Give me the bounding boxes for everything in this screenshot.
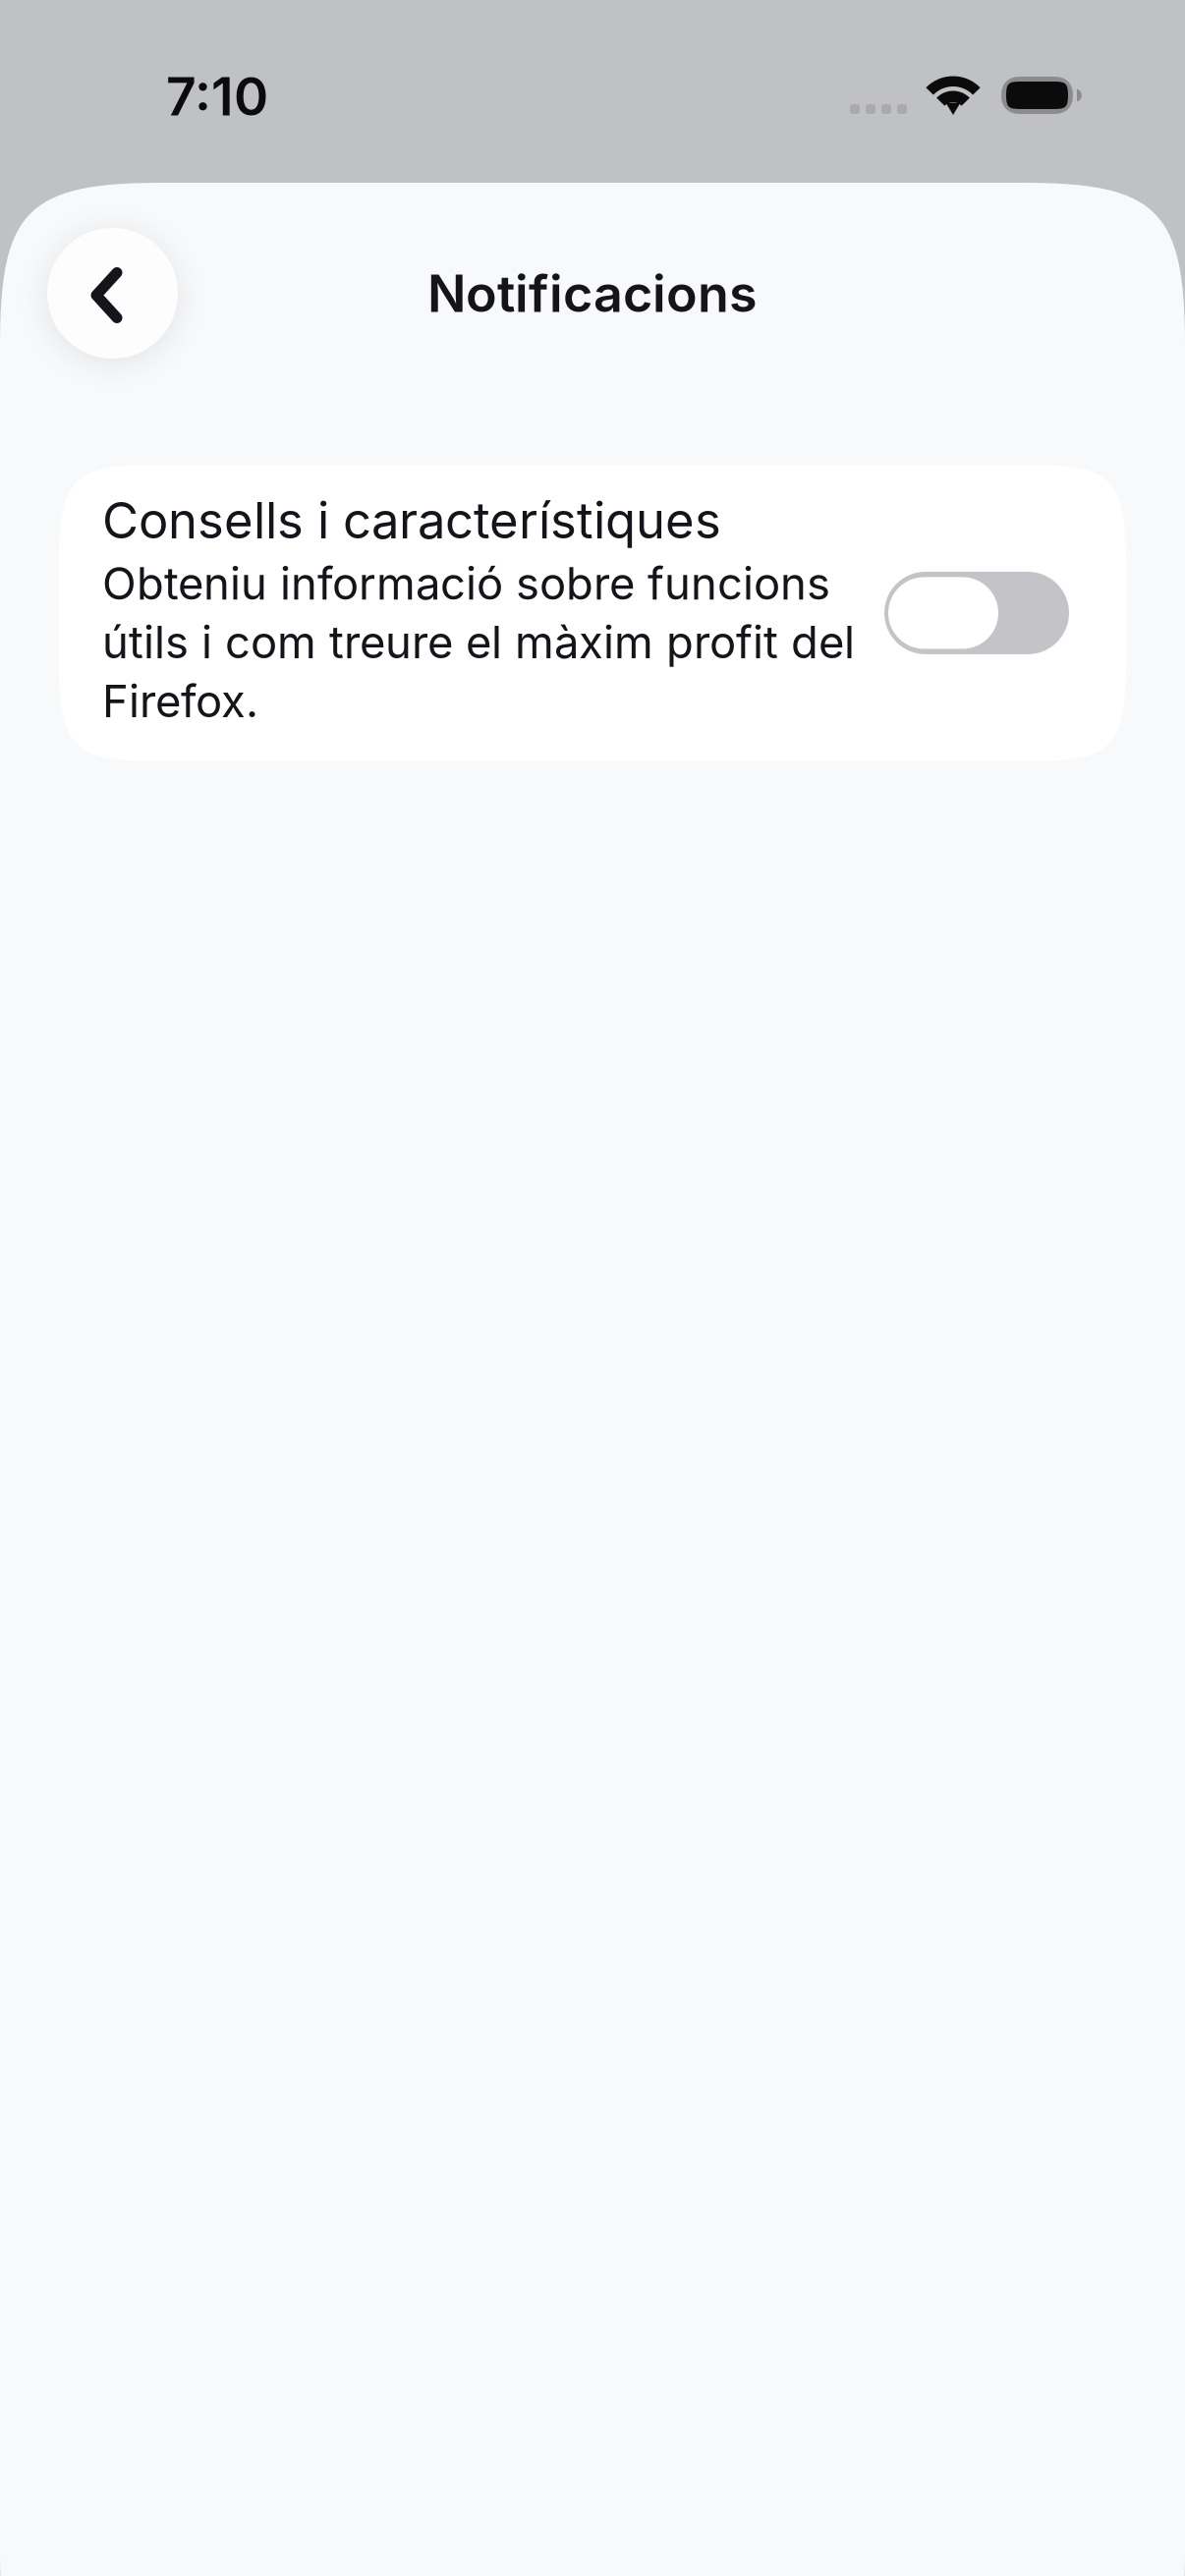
staticText: 7:10 bbox=[166, 65, 268, 128]
button[interactable]: Consells i característiques bbox=[59, 465, 1126, 761]
staticText: Obteniu informació sobre funcions útils … bbox=[102, 556, 855, 728]
button[interactable]: Back bbox=[47, 228, 178, 359]
staticText: Consells i característiques bbox=[102, 490, 721, 550]
staticText: Notificacions bbox=[427, 262, 758, 324]
